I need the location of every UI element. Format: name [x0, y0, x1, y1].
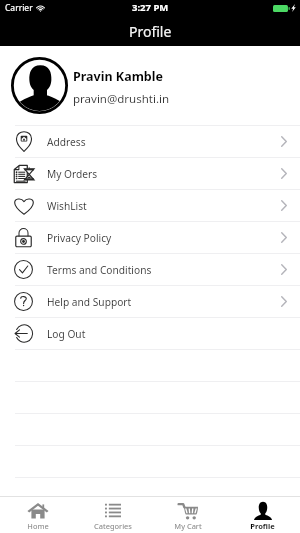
other: Terms and Conditions — [14, 260, 33, 279]
staticText: Profile — [250, 521, 275, 531]
button[interactable]: Profile — [225, 497, 300, 533]
staticText: My Orders — [47, 167, 98, 181]
button[interactable]: My Orders — [0, 158, 300, 189]
staticText: Terms and Conditions — [47, 263, 152, 277]
button[interactable]: WishList — [0, 190, 300, 221]
button[interactable]: Terms and Conditions — [0, 254, 300, 285]
staticText: My Cart — [174, 521, 202, 531]
other: Profile — [254, 501, 272, 520]
other: Address — [16, 132, 32, 152]
other: Home — [27, 501, 49, 520]
staticText: Carrier — [5, 2, 33, 14]
staticText: 3:27 PM — [132, 1, 169, 14]
other: Log Out — [14, 324, 33, 343]
button[interactable]: Address — [0, 126, 300, 157]
button[interactable]: My Cart — [150, 497, 225, 533]
staticText: pravin@drushti.in — [73, 91, 170, 107]
other: Help and Support — [14, 292, 33, 311]
button[interactable]: Categories — [75, 497, 150, 533]
other: My Orders — [13, 164, 34, 184]
staticText: Home — [27, 521, 49, 531]
other: Profile photo — [11, 57, 68, 114]
button[interactable]: Privacy Policy — [0, 222, 300, 253]
staticText: Address — [47, 135, 86, 149]
other: Privacy Policy — [15, 227, 32, 248]
staticText: Privacy Policy — [47, 231, 112, 245]
other: Categories — [105, 503, 121, 518]
staticText: Categories — [94, 521, 132, 531]
other: WishList — [14, 197, 34, 215]
staticText: WishList — [47, 199, 87, 213]
staticText: Profile — [129, 22, 172, 41]
button[interactable]: Home — [0, 497, 75, 533]
other: My Cart — [178, 502, 198, 520]
staticText: Log Out — [47, 327, 86, 341]
staticText: Help and Support — [47, 295, 132, 309]
button[interactable]: Log Out — [0, 318, 300, 349]
staticText: Pravin Kamble — [73, 68, 163, 85]
button[interactable]: Help and Support — [0, 286, 300, 317]
